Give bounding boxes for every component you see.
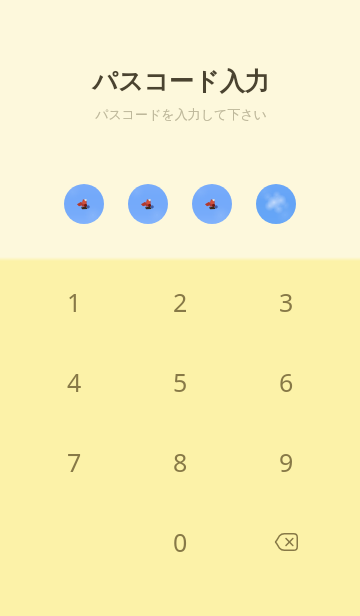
button[interactable]: 7 [21, 422, 127, 502]
staticText: 2 [173, 285, 188, 319]
button[interactable]: 4 [21, 342, 127, 422]
button[interactable]: Delete [233, 502, 339, 582]
other: Empty slot [256, 184, 296, 224]
staticText: パスコード入力 [1, 66, 360, 97]
staticText: 8 [173, 445, 188, 479]
other: Entered digit [192, 184, 232, 224]
staticText: 6 [279, 365, 294, 399]
button[interactable]: 3 [233, 262, 339, 342]
staticText: 4 [67, 365, 82, 399]
staticText: 0 [173, 525, 188, 559]
button[interactable]: 6 [233, 342, 339, 422]
staticText: 9 [279, 445, 294, 479]
button[interactable]: 9 [233, 422, 339, 502]
other: Entered digit [128, 184, 168, 224]
button[interactable]: 8 [127, 422, 233, 502]
other: Entered digit [64, 184, 104, 224]
staticText: 1 [67, 285, 82, 319]
button[interactable]: 5 [127, 342, 233, 422]
staticText: 7 [67, 445, 82, 479]
button[interactable]: 0 [127, 502, 233, 582]
staticText: 3 [279, 285, 294, 319]
button[interactable]: 2 [127, 262, 233, 342]
staticText: 5 [173, 365, 188, 399]
button[interactable]: 1 [21, 262, 127, 342]
staticText: パスコードを入力して下さい [1, 106, 360, 122]
